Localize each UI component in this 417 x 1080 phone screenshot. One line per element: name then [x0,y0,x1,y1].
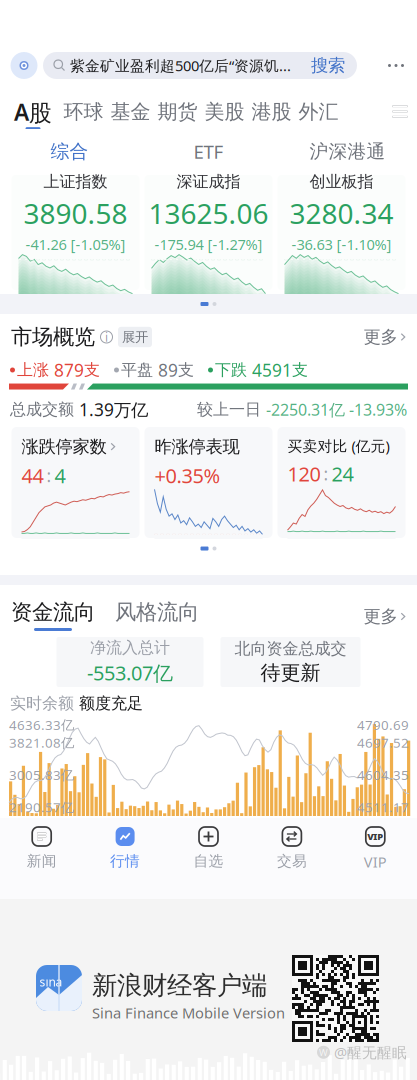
staticText: 净流入总计 [90,638,170,658]
staticText: 3005.83亿 [9,766,74,784]
staticText: -553.07亿 [87,659,173,686]
staticText: 期货 [157,99,197,124]
staticText: 3280.34 [289,194,393,232]
staticText: 支 [178,360,194,380]
button[interactable]: ETF [139,134,278,168]
staticText: 外汇 [298,99,338,124]
button[interactable]: 紫金矿业盈利超500亿后“资源饥... [43,52,357,79]
button[interactable]: 期货 [154,99,201,130]
staticText: 4790.69 [357,716,409,734]
staticText: 支 [84,360,100,380]
button[interactable]: 交易 [250,818,334,899]
button[interactable]: 昨涨停表现 [144,427,272,538]
staticText: -36.63 [-1.10%] [291,235,391,254]
staticText: Sina Finance Mobile Version [92,1003,285,1023]
button[interactable]: 栏目 [383,99,417,123]
staticText: 深证成指 [176,172,240,191]
button[interactable]: 基金 [107,99,154,130]
staticText: 3821.08亿 [9,734,74,751]
staticText: 交易 [277,852,307,870]
staticText: 4511.17 [357,798,409,816]
staticText: 120 [287,460,320,487]
button[interactable]: 资金流向 [11,587,95,631]
staticText: 额度充足 [79,694,143,713]
staticText: 4591 [247,358,292,381]
staticText: 24 [331,460,353,487]
staticText: 实时余额 [10,694,79,713]
button[interactable]: 更多 [364,326,406,348]
staticText: 4636.33亿 [9,716,74,734]
staticText: -2250.31亿 -13.93% [266,399,407,420]
button[interactable]: VIP [334,818,417,899]
staticText: 下跌 [215,360,247,380]
staticText: +0.35% [154,462,220,489]
staticText: sina [39,974,62,990]
staticText: 资金流向 [11,599,95,625]
button[interactable]: 涨跌停家数 [11,427,139,538]
staticText: : [46,464,51,487]
button[interactable]: 综合 [0,134,139,168]
button[interactable]: 环球 [60,99,107,130]
staticText: 新浪财经客户端 [92,970,267,1001]
staticText: 44 [21,462,43,489]
staticText: 创业板指 [309,172,373,191]
staticText: 较上一日 [197,400,266,419]
staticText: -175.94 [-1.27%] [154,235,262,254]
button[interactable]: 更多 [375,51,417,80]
staticText: 上证指数 [43,172,107,191]
button[interactable]: 说明 [95,330,118,343]
staticText: 涨跌停家数 [21,436,106,457]
button[interactable]: 展开 [118,327,152,347]
staticText: 待更新 [260,660,320,685]
staticText: 879 [49,358,84,381]
staticText: 自选 [193,852,223,870]
staticText: i [105,329,108,345]
staticText: A股 [14,97,52,127]
staticText: 北向资金总成交 [234,639,346,659]
staticText: 1.39万亿 [79,398,148,421]
staticText: 3890.58 [23,194,127,232]
staticText: 4604.35 [357,766,409,784]
staticText: 13625.06 [148,194,268,232]
staticText: 4697.52 [357,734,409,751]
staticText: 新闻 [27,852,57,870]
staticText: 美股 [204,99,244,124]
staticText: 基金 [110,99,150,124]
staticText: : [323,462,328,485]
staticText: 89 [153,358,178,381]
staticText: 风格流向 [115,599,199,625]
staticText: 搜索 [311,55,345,76]
button[interactable]: 风格流向 [95,587,199,631]
staticText: -41.26 [-1.05%] [25,235,125,254]
button[interactable]: A股 [6,99,60,130]
staticText: 综合 [50,140,88,163]
staticText: 更多 [364,326,398,348]
button[interactable]: 微博 [5,51,43,80]
staticText: VIP [364,852,387,871]
staticText: 更多 [364,606,398,627]
staticText: 平盘 [121,360,153,380]
button[interactable]: 沪深港通 [278,134,417,168]
button[interactable]: 买卖对比 (亿元) [277,427,405,538]
button[interactable]: 更多 [364,587,406,631]
staticText: 买卖对比 (亿元) [287,436,389,455]
staticText: 港股 [251,99,291,124]
staticText: 紫金矿业盈利超500亿后“资源饥... [70,56,291,75]
staticText: 2190.57亿 [9,798,74,816]
staticText: 总成交额 [10,400,79,419]
staticText: W [319,1046,328,1058]
staticText: 沪深港通 [309,140,385,163]
button[interactable]: 美股 [201,99,248,130]
button[interactable]: 新闻 [0,818,83,899]
staticText: 环球 [63,99,103,124]
staticText: 行情 [110,852,140,870]
staticText: 昨涨停表现 [154,436,239,457]
staticText: ETF [193,139,223,164]
button[interactable]: 自选 [167,818,250,899]
staticText: 市场概览 [11,324,95,350]
staticText: @醒无醒眠 [334,1042,407,1062]
staticText: 展开 [122,329,148,345]
button[interactable]: 行情 [83,818,167,899]
button[interactable]: 港股 [248,99,295,130]
button[interactable]: 外汇 [295,99,342,130]
